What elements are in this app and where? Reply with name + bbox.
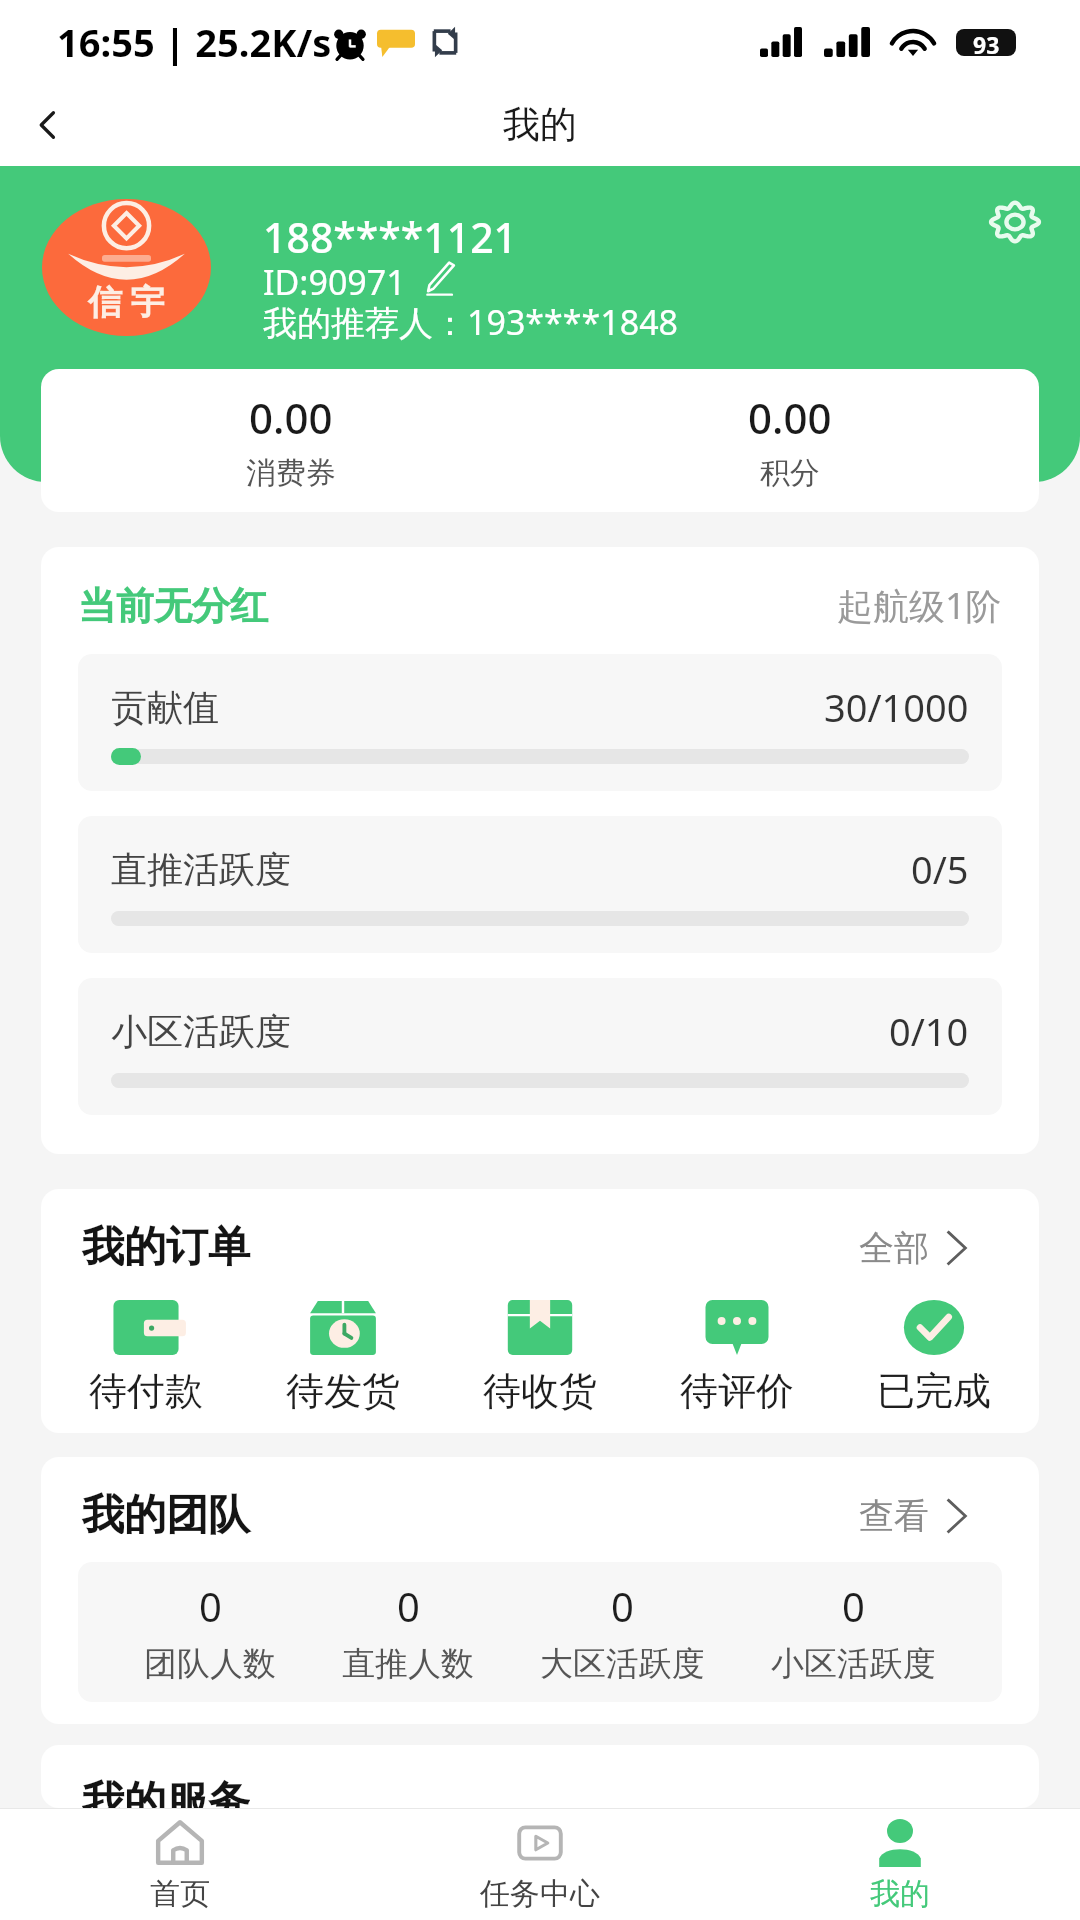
staticText: 首页 <box>150 1875 210 1913</box>
staticText: 待评价 <box>680 1367 794 1415</box>
button[interactable]: 0.00 <box>41 389 540 492</box>
button[interactable]: 贡献值 <box>78 654 1002 791</box>
button[interactable]: 待评价 <box>638 1300 835 1415</box>
staticText: 直推活跃度 <box>111 847 291 892</box>
staticText: 0 <box>199 1579 222 1633</box>
button[interactable]: 0 <box>342 1562 474 1702</box>
button[interactable]: 0 <box>771 1562 936 1702</box>
staticText: 0/5 <box>911 843 969 895</box>
button[interactable]: 待收货 <box>441 1300 638 1415</box>
staticText: 直推人数 <box>342 1643 474 1685</box>
staticText: 已完成 <box>877 1367 991 1415</box>
button[interactable]: 已完成 <box>835 1300 1032 1415</box>
staticText: 积分 <box>760 454 820 492</box>
button[interactable]: 待付款 <box>48 1300 244 1415</box>
staticText: 我的订单 <box>82 1221 250 1274</box>
staticText: 我的推荐人：193****1848 <box>263 299 679 341</box>
button[interactable]: 我的 <box>720 1809 1080 1920</box>
staticText: 消费券 <box>246 454 336 492</box>
staticText: 全部 <box>859 1226 929 1270</box>
button[interactable]: Edit <box>424 262 458 296</box>
staticText: 0 <box>397 1579 420 1633</box>
staticText: 小区活跃度 <box>111 1009 291 1054</box>
staticText: 待发货 <box>286 1367 400 1415</box>
button[interactable]: 直推活跃度 <box>78 816 1002 953</box>
staticText: 起航级1阶 <box>837 581 1002 630</box>
button[interactable]: 0.00 <box>540 389 1039 492</box>
button[interactable]: 查看 <box>859 1490 967 1542</box>
staticText: 我的团队 <box>82 1489 250 1542</box>
staticText: 16:55 | 25.2K/s <box>57 16 332 68</box>
staticText: 当前无分红 <box>78 582 268 630</box>
button[interactable]: 小区活跃度 <box>78 978 1002 1115</box>
staticText: 我的 <box>503 101 577 148</box>
staticText: 我的 <box>870 1875 930 1913</box>
staticText: 小区活跃度 <box>771 1643 936 1685</box>
button[interactable]: 任务中心 <box>360 1809 720 1920</box>
staticText: 30/1000 <box>824 681 969 733</box>
staticText: 0.00 <box>249 389 333 446</box>
button[interactable]: 0 <box>540 1562 705 1702</box>
staticText: 0.00 <box>748 389 832 446</box>
button[interactable]: Back <box>18 95 78 155</box>
staticText: 我的服务 <box>82 1776 250 1808</box>
button[interactable]: 待发货 <box>244 1300 441 1415</box>
staticText: 188****1121 <box>263 209 518 259</box>
staticText: ID:90971 <box>263 259 406 299</box>
staticText: 信 宇 <box>88 278 165 324</box>
staticText: 任务中心 <box>480 1875 600 1913</box>
staticText: 查看 <box>859 1494 929 1538</box>
button[interactable]: 0 <box>144 1562 276 1702</box>
staticText: 待付款 <box>89 1367 203 1415</box>
staticText: 贡献值 <box>111 685 219 730</box>
staticText: 0 <box>842 1579 865 1633</box>
staticText: 0 <box>611 1579 634 1633</box>
button[interactable]: 首页 <box>0 1809 360 1920</box>
staticText: 待收货 <box>483 1367 597 1415</box>
staticText: 团队人数 <box>144 1643 276 1685</box>
staticText: 大区活跃度 <box>540 1643 705 1685</box>
staticText: 93 <box>973 29 1000 56</box>
button[interactable]: Settings <box>980 187 1050 257</box>
button[interactable]: 全部 <box>859 1222 967 1274</box>
staticText: 0/10 <box>889 1005 969 1057</box>
button[interactable]: Avatar <box>42 199 211 336</box>
